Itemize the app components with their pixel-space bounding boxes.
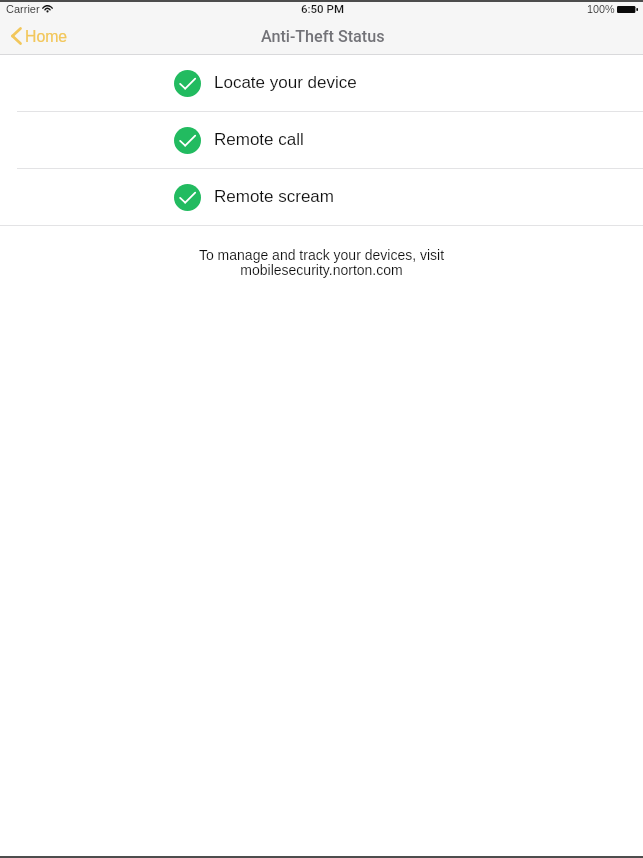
staticText: Carrier [6, 3, 40, 15]
staticText: Locate your device [214, 73, 357, 92]
staticText: 6:50 PM [301, 2, 344, 15]
other: Back to Home [11, 27, 22, 45]
staticText: Remote scream [214, 187, 334, 206]
button[interactable]: Remote call [0, 112, 643, 169]
staticText: Remote call [214, 130, 304, 149]
staticText: 100% [587, 3, 615, 15]
button[interactable]: Locate your device [0, 55, 643, 112]
staticText: To manage and track your devices, visit … [0, 247, 643, 278]
button[interactable]: Back to Home [0, 21, 80, 51]
button[interactable]: Remote scream [0, 169, 643, 226]
staticText: Home [25, 28, 68, 46]
staticText: Anti-Theft Status [261, 27, 385, 46]
